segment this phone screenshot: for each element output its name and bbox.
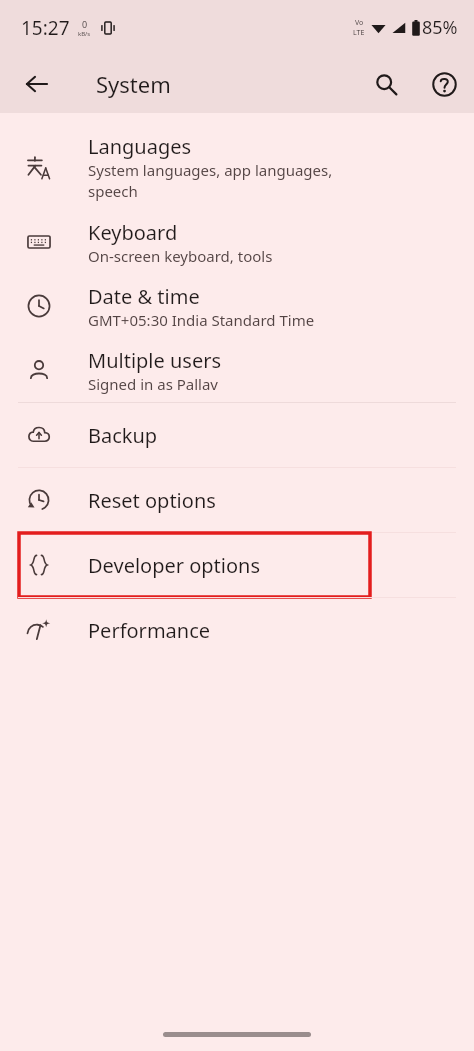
button[interactable]: Languages (0, 125, 474, 210)
staticText: Developer options (88, 552, 261, 579)
staticText: Languages (88, 133, 192, 160)
button[interactable]: Performance (0, 598, 474, 662)
staticText: Keyboard (88, 219, 178, 246)
staticText: 0 (82, 18, 88, 30)
button[interactable]: Keyboard (0, 210, 474, 274)
staticText: kB/s (78, 30, 91, 38)
button[interactable]: Developer options (0, 533, 474, 597)
button[interactable]: Search (362, 60, 410, 108)
button[interactable]: Backup (0, 403, 474, 467)
staticText: 85% (422, 15, 458, 40)
staticText: System (96, 69, 171, 99)
staticText: Date & time (88, 283, 200, 310)
button[interactable]: Help (420, 60, 468, 108)
button[interactable]: Reset options (0, 468, 474, 532)
staticText: Performance (88, 617, 211, 644)
staticText: On-screen keyboard, tools (88, 246, 273, 266)
button[interactable]: Date & time (0, 274, 474, 338)
staticText: System languages, app languages, speech (88, 160, 333, 202)
staticText: Multiple users (88, 347, 222, 374)
staticText: Reset options (88, 487, 216, 514)
button[interactable]: Back (13, 60, 61, 108)
button[interactable]: Multiple users (0, 338, 474, 402)
staticText: Vo (355, 18, 364, 28)
staticText: Signed in as Pallav (88, 374, 218, 394)
staticText: LTE (353, 28, 365, 38)
staticText: Backup (88, 422, 158, 449)
staticText: GMT+05:30 India Standard Time (88, 310, 315, 330)
staticText: 15:27 (21, 15, 70, 41)
